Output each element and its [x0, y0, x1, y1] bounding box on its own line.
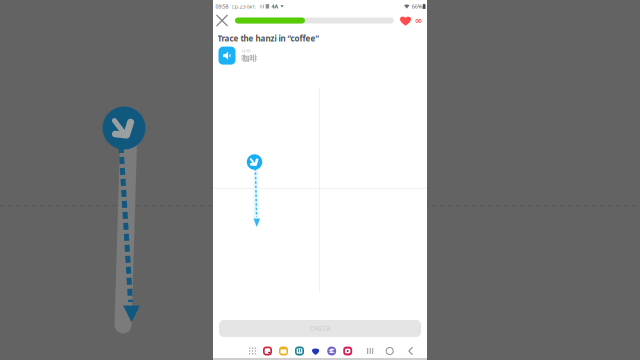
button[interactable]: All apps — [249, 347, 256, 354]
button[interactable]: Home — [386, 347, 393, 354]
staticText: ср, 23 окт. — [231, 3, 255, 10]
staticText: 09:58 — [215, 3, 228, 10]
button[interactable]: App — [279, 346, 288, 355]
button[interactable]: Play audio — [218, 47, 235, 65]
button[interactable]: Close — [216, 14, 228, 26]
button[interactable]: App — [343, 346, 352, 355]
staticText: Trace the hanzi in “coffee” — [217, 33, 319, 44]
staticText: ∞ — [414, 15, 422, 26]
button[interactable]: App — [327, 346, 336, 355]
staticText: CHECK — [309, 324, 330, 333]
button[interactable]: App — [312, 347, 319, 355]
staticText: 4A — [271, 3, 278, 10]
button[interactable]: App — [295, 346, 304, 355]
button[interactable]: Back — [408, 347, 413, 354]
staticText: 咖啡 — [241, 53, 257, 63]
button[interactable]: Recent apps — [367, 348, 373, 354]
button[interactable]: App — [263, 346, 272, 355]
staticText: 66% — [412, 3, 422, 10]
staticText: kā fēi — [241, 48, 250, 53]
